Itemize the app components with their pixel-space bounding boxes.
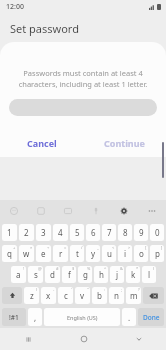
staticText: ': [71, 287, 72, 292]
button[interactable]: p: [150, 245, 164, 262]
button[interactable]: 2: [19, 224, 34, 241]
staticText: n: [114, 290, 119, 301]
staticText: s: [34, 269, 38, 280]
staticText: 5: [75, 227, 80, 238]
button[interactable]: 7: [102, 224, 116, 241]
button[interactable]: y: [86, 245, 100, 262]
button[interactable]: Keyboard settings: [110, 200, 138, 222]
staticText: ]: [161, 245, 163, 250]
button[interactable]: 8: [118, 224, 132, 241]
button[interactable]: f: [62, 266, 76, 283]
button[interactable]: t: [70, 245, 84, 262]
button[interactable]: Emoji: [0, 200, 27, 222]
staticText: 6: [91, 227, 96, 238]
staticText: ?: [138, 287, 140, 292]
staticText: i: [124, 248, 127, 259]
staticText: 12:00: [6, 2, 24, 12]
button[interactable]: r: [53, 245, 68, 262]
staticText: (: [153, 266, 155, 271]
button[interactable]: Hide keyboard: [111, 328, 166, 350]
button[interactable]: Backspace: [143, 287, 164, 304]
staticText: 2: [24, 227, 29, 238]
staticText: ,: [34, 312, 37, 323]
button[interactable]: More options: [138, 200, 166, 222]
staticText: u: [107, 248, 112, 259]
staticText: &: [120, 266, 123, 271]
staticText: Set password: [10, 21, 79, 36]
staticText: Passwords must contain at least 4 charac…: [10, 68, 156, 89]
button[interactable]: Shift: [2, 287, 22, 304]
staticText: w: [23, 248, 30, 259]
button[interactable]: 5: [70, 224, 84, 241]
button[interactable]: s: [28, 266, 43, 283]
button[interactable]: ,: [28, 308, 42, 326]
staticText: g: [83, 269, 88, 280]
staticText: ;: [121, 287, 123, 292]
button[interactable]: Recent apps: [0, 328, 56, 350]
button[interactable]: 0: [150, 224, 164, 241]
button[interactable]: j: [110, 266, 124, 283]
button[interactable]: Home: [56, 328, 111, 350]
button[interactable]: q: [2, 245, 17, 262]
button[interactable]: Done: [138, 308, 164, 326]
staticText: /: [81, 245, 83, 250]
button[interactable]: b: [92, 287, 107, 304]
staticText: #: [56, 266, 59, 271]
staticText: b: [97, 290, 102, 301]
button[interactable]: l: [142, 266, 156, 283]
staticText: 3: [41, 227, 46, 238]
staticText: =: [64, 245, 67, 250]
button[interactable]: 9: [134, 224, 148, 241]
button[interactable]: 6: [86, 224, 100, 241]
staticText: $: [72, 266, 75, 271]
button[interactable]: c: [58, 287, 73, 304]
button[interactable]: Continue: [83, 132, 166, 154]
button[interactable]: k: [126, 266, 140, 283]
staticText: q: [7, 248, 12, 259]
button[interactable]: x: [41, 287, 56, 304]
button[interactable]: z: [24, 287, 39, 304]
staticText: t: [76, 248, 79, 259]
staticText: y: [91, 248, 96, 259]
button[interactable]: English (US): [44, 308, 120, 326]
button[interactable]: w: [19, 245, 34, 262]
staticText: f: [68, 269, 71, 280]
staticText: Continue: [104, 137, 145, 149]
button[interactable]: m: [126, 287, 141, 304]
staticText: p: [155, 248, 160, 259]
staticText: m: [130, 290, 138, 301]
button[interactable]: Cancel: [0, 132, 83, 154]
button[interactable]: GIF: [54, 200, 82, 222]
button[interactable]: 3: [36, 224, 51, 241]
button[interactable]: a: [11, 266, 26, 283]
staticText: 8: [123, 227, 128, 238]
staticText: Cancel: [27, 137, 57, 149]
button[interactable]: [9, 99, 157, 116]
button[interactable]: .: [122, 308, 136, 326]
button[interactable]: o: [134, 245, 148, 262]
button[interactable]: !#1: [2, 308, 26, 326]
button[interactable]: 1: [2, 224, 17, 241]
staticText: ^: [104, 266, 107, 271]
button[interactable]: e: [36, 245, 51, 262]
button[interactable]: Stickers: [27, 200, 54, 222]
button[interactable]: n: [109, 287, 124, 304]
staticText: *: [136, 266, 139, 271]
button[interactable]: d: [45, 266, 60, 283]
button[interactable]: i: [118, 245, 132, 262]
staticText: ): [36, 287, 38, 292]
staticText: <: [112, 245, 115, 250]
staticText: [: [145, 245, 147, 250]
button[interactable]: u: [102, 245, 116, 262]
button[interactable]: v: [75, 287, 90, 304]
staticText: ×: [30, 245, 33, 250]
button[interactable]: h: [94, 266, 108, 283]
button[interactable]: 4: [53, 224, 68, 241]
staticText: English (US): [67, 314, 98, 321]
staticText: !#1: [9, 313, 19, 322]
staticText: 7: [107, 227, 112, 238]
staticText: >: [128, 245, 131, 250]
staticText: ": [87, 287, 89, 292]
button[interactable]: g: [78, 266, 92, 283]
